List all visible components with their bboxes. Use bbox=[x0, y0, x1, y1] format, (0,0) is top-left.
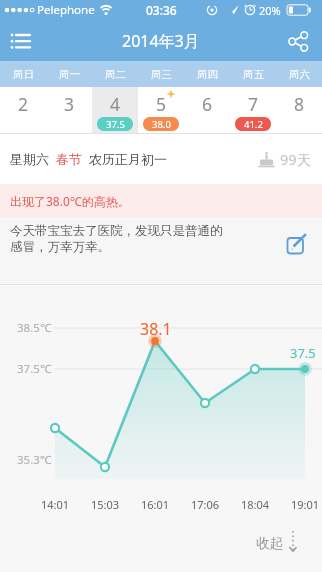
staticText: 2014年3月 bbox=[122, 30, 200, 52]
staticText: Pelephone bbox=[37, 2, 95, 18]
staticText: 出现了38.0℃的高热。 bbox=[10, 193, 130, 209]
staticText: 2 bbox=[18, 92, 29, 116]
button[interactable] bbox=[282, 27, 314, 55]
button[interactable]: 4 bbox=[92, 87, 138, 121]
staticText: 星期六 bbox=[10, 151, 49, 167]
button[interactable]: 收起 bbox=[256, 532, 312, 554]
button[interactable] bbox=[6, 27, 36, 55]
staticText: 15:03 bbox=[91, 497, 120, 512]
staticText: 7 bbox=[248, 92, 259, 116]
staticText: 38.1 bbox=[140, 318, 172, 336]
button[interactable]: 3 bbox=[46, 87, 92, 121]
staticText: 35.3℃ bbox=[17, 452, 52, 468]
staticText: 20% bbox=[259, 3, 281, 18]
staticText: 4 bbox=[110, 92, 121, 116]
staticText: 03:36 bbox=[146, 2, 177, 18]
staticText: 8 bbox=[294, 92, 305, 116]
staticText: 37.5℃ bbox=[17, 361, 52, 377]
staticText: 春节 bbox=[56, 151, 82, 167]
staticText: 18:04 bbox=[241, 497, 270, 512]
staticText: 感冒，万幸万幸。 bbox=[10, 239, 110, 255]
button[interactable]: 7 bbox=[230, 87, 276, 121]
staticText: 周二 bbox=[105, 68, 126, 81]
button[interactable] bbox=[283, 230, 311, 258]
staticText: 周日 bbox=[13, 68, 34, 81]
staticText: 17:06 bbox=[191, 497, 220, 512]
staticText: 38.0 bbox=[152, 118, 171, 131]
staticText: 99天 bbox=[280, 149, 312, 169]
button[interactable]: 2 bbox=[0, 87, 46, 121]
staticText: 6 bbox=[202, 92, 213, 116]
staticText: 16:01 bbox=[141, 497, 170, 512]
staticText: 19:01 bbox=[291, 497, 320, 512]
staticText: 周三 bbox=[151, 68, 172, 81]
staticText: 周六 bbox=[289, 68, 310, 81]
staticText: 今天带宝宝去了医院，发现只是普通的 bbox=[10, 223, 223, 239]
button[interactable]: 5 bbox=[138, 87, 184, 121]
staticText: 37.5 bbox=[290, 344, 316, 362]
staticText: 农历正月初一 bbox=[89, 151, 167, 167]
staticText: 3 bbox=[64, 92, 75, 116]
button[interactable]: 6 bbox=[184, 87, 230, 121]
staticText: 38.5℃ bbox=[17, 320, 52, 336]
staticText: 37.5 bbox=[106, 118, 125, 131]
staticText: 周五 bbox=[243, 68, 264, 81]
staticText: 14:01 bbox=[41, 497, 70, 512]
staticText: 周四 bbox=[197, 68, 218, 81]
staticText: 收起 bbox=[256, 535, 283, 552]
staticText: 5 bbox=[156, 92, 167, 116]
staticText: 41.2 bbox=[244, 118, 263, 131]
button[interactable]: 8 bbox=[276, 87, 322, 121]
staticText: 周一 bbox=[59, 68, 80, 81]
